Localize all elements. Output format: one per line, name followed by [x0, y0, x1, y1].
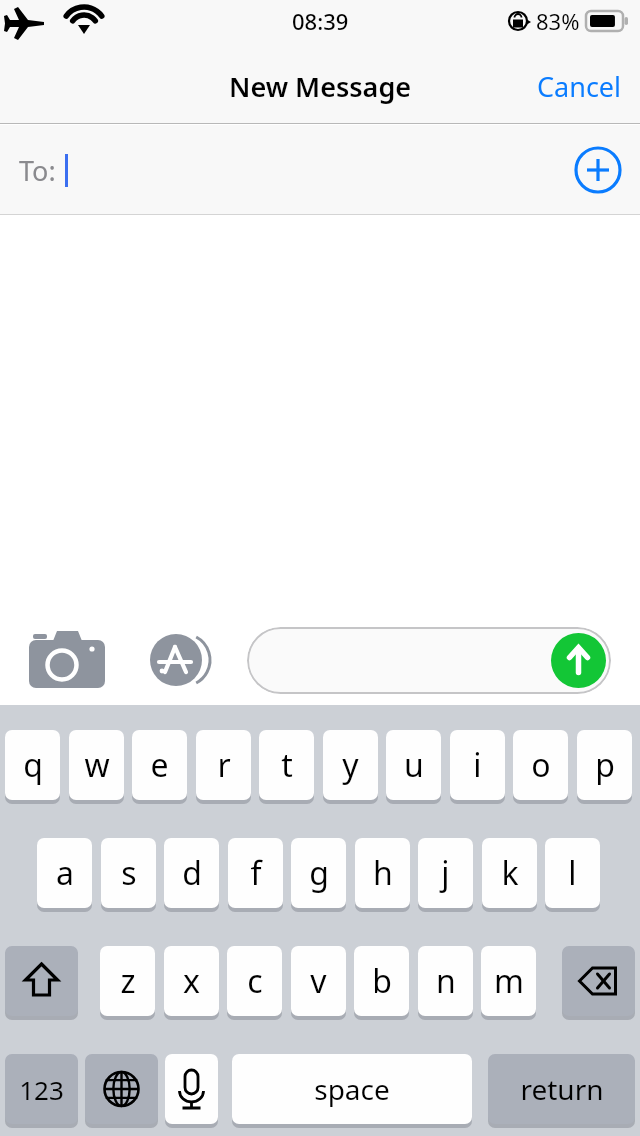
staticText: p [595, 743, 615, 787]
staticText: 123 [19, 1072, 64, 1107]
button[interactable]: o [513, 730, 568, 800]
button[interactable]: u [386, 730, 441, 800]
button[interactable]: Next keyboard [85, 1054, 158, 1124]
button[interactable]: y [323, 730, 378, 800]
button[interactable]: Cancel [519, 54, 640, 119]
button[interactable]: return [488, 1054, 635, 1124]
staticText: space [314, 1070, 390, 1108]
staticText: v [310, 959, 327, 1003]
staticText: i [473, 743, 482, 787]
staticText: j [441, 851, 450, 895]
button[interactable]: b [354, 946, 409, 1016]
button[interactable]: c [227, 946, 282, 1016]
staticText: c [247, 959, 263, 1003]
staticText: r [217, 743, 231, 787]
staticText: m [494, 959, 524, 1003]
button[interactable]: j [418, 838, 473, 908]
staticText: New Message [229, 68, 412, 105]
staticText: To: [19, 152, 56, 189]
button[interactable]: Send [247, 627, 611, 694]
button[interactable]: space [232, 1054, 472, 1124]
staticText: a [56, 851, 74, 895]
button[interactable]: g [291, 838, 346, 908]
staticText: z [120, 959, 136, 1003]
button[interactable]: n [418, 946, 473, 1016]
button[interactable]: Add contact [574, 146, 622, 194]
button[interactable]: l [545, 838, 600, 908]
button[interactable]: p [577, 730, 632, 800]
button[interactable]: 123 [5, 1054, 78, 1124]
button[interactable]: z [100, 946, 155, 1016]
button[interactable]: Send [551, 633, 606, 688]
button[interactable]: s [101, 838, 156, 908]
button[interactable]: d [164, 838, 219, 908]
button[interactable]: h [355, 838, 410, 908]
button[interactable]: Backspace [562, 946, 635, 1016]
staticText: s [121, 851, 137, 895]
staticText: o [531, 743, 551, 787]
staticText: d [182, 851, 202, 895]
staticText: q [23, 743, 43, 787]
button[interactable]: f [228, 838, 283, 908]
button[interactable]: App Store [138, 623, 224, 697]
staticText: e [150, 743, 169, 787]
button[interactable]: x [164, 946, 219, 1016]
staticText: t [281, 743, 293, 787]
button[interactable]: e [132, 730, 187, 800]
staticText: u [404, 743, 424, 787]
button[interactable]: Camera [24, 625, 110, 695]
button[interactable]: r [196, 730, 251, 800]
staticText: l [568, 851, 577, 895]
button[interactable]: Shift [5, 946, 78, 1016]
staticText: Cancel [537, 68, 622, 105]
button[interactable]: q [5, 730, 60, 800]
staticText: 08:39 [292, 6, 349, 36]
staticText: return [520, 1070, 604, 1108]
button[interactable]: m [481, 946, 536, 1016]
staticText: n [436, 959, 456, 1003]
staticText: b [372, 959, 392, 1003]
button[interactable]: a [37, 838, 92, 908]
button[interactable]: i [450, 730, 505, 800]
staticText: f [250, 851, 262, 895]
button[interactable]: v [291, 946, 346, 1016]
button[interactable]: k [482, 838, 537, 908]
staticText: k [501, 851, 519, 895]
staticText: h [373, 851, 393, 895]
button[interactable]: w [69, 730, 124, 800]
button[interactable]: Dictate [165, 1054, 218, 1124]
staticText: 83% [536, 6, 580, 36]
staticText: y [342, 743, 359, 787]
staticText: x [183, 959, 200, 1003]
staticText: w [84, 743, 110, 787]
button[interactable]: t [259, 730, 314, 800]
staticText: g [309, 851, 329, 895]
